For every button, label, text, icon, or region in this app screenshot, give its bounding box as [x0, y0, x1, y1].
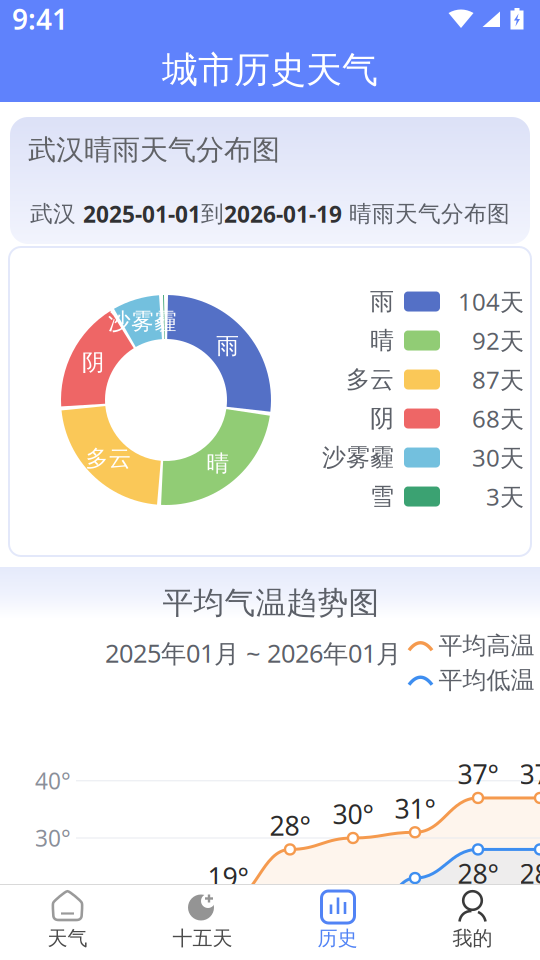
staticText: 沙雾霾: [322, 443, 394, 472]
button[interactable]: 我的: [405, 885, 540, 960]
staticText: 平均低温: [438, 665, 534, 695]
staticText: 37°: [457, 756, 498, 792]
staticText: 40°: [35, 766, 71, 796]
staticText: 我的: [452, 926, 492, 951]
staticText: 19°: [207, 859, 248, 895]
button[interactable]: 历史: [270, 885, 405, 960]
staticText: 28°: [519, 856, 540, 891]
staticText: 晴: [370, 326, 394, 355]
staticText: 31°: [394, 791, 435, 826]
staticText: 城市历史天气: [162, 48, 378, 92]
staticText: 87天: [472, 364, 524, 395]
staticText: 晴雨天气分布图: [342, 200, 510, 228]
staticText: 2025-01-01: [83, 199, 201, 229]
staticText: 阴: [82, 348, 105, 376]
staticText: 多云: [346, 365, 394, 394]
button[interactable]: 十五天: [135, 885, 270, 960]
staticText: 阴: [370, 404, 394, 433]
staticText: 沙雾霾: [108, 307, 177, 335]
staticText: 十五天: [172, 926, 232, 951]
staticText: 武汉晴雨天气分布图: [28, 133, 280, 167]
staticText: 28°: [269, 808, 310, 843]
staticText: 晴: [206, 449, 229, 477]
staticText: 历史: [317, 926, 357, 951]
staticText: 雪: [370, 482, 394, 511]
staticText: 104天: [458, 286, 524, 317]
staticText: 30天: [472, 442, 524, 473]
staticText: 到: [201, 200, 224, 228]
staticText: 2026-01-19: [224, 199, 342, 229]
staticText: 30°: [35, 823, 71, 853]
staticText: 天气: [47, 926, 87, 951]
staticText: 平均气温趋势图: [162, 584, 379, 622]
staticText: 92天: [472, 325, 524, 356]
staticText: 武汉: [30, 200, 83, 228]
staticText: 68天: [472, 403, 524, 434]
staticText: 平均高温: [438, 631, 534, 660]
staticText: 30°: [332, 796, 373, 832]
staticText: 9:41: [12, 0, 68, 38]
staticText: 雨: [370, 287, 394, 316]
button[interactable]: 天气: [0, 885, 135, 960]
staticText: 37°: [519, 756, 540, 792]
staticText: 3天: [486, 481, 524, 512]
staticText: 多云: [85, 444, 131, 472]
staticText: 2025年01月 ~ 2026年01月: [105, 636, 401, 670]
staticText: 28°: [457, 856, 498, 891]
staticText: 雨: [216, 332, 239, 360]
